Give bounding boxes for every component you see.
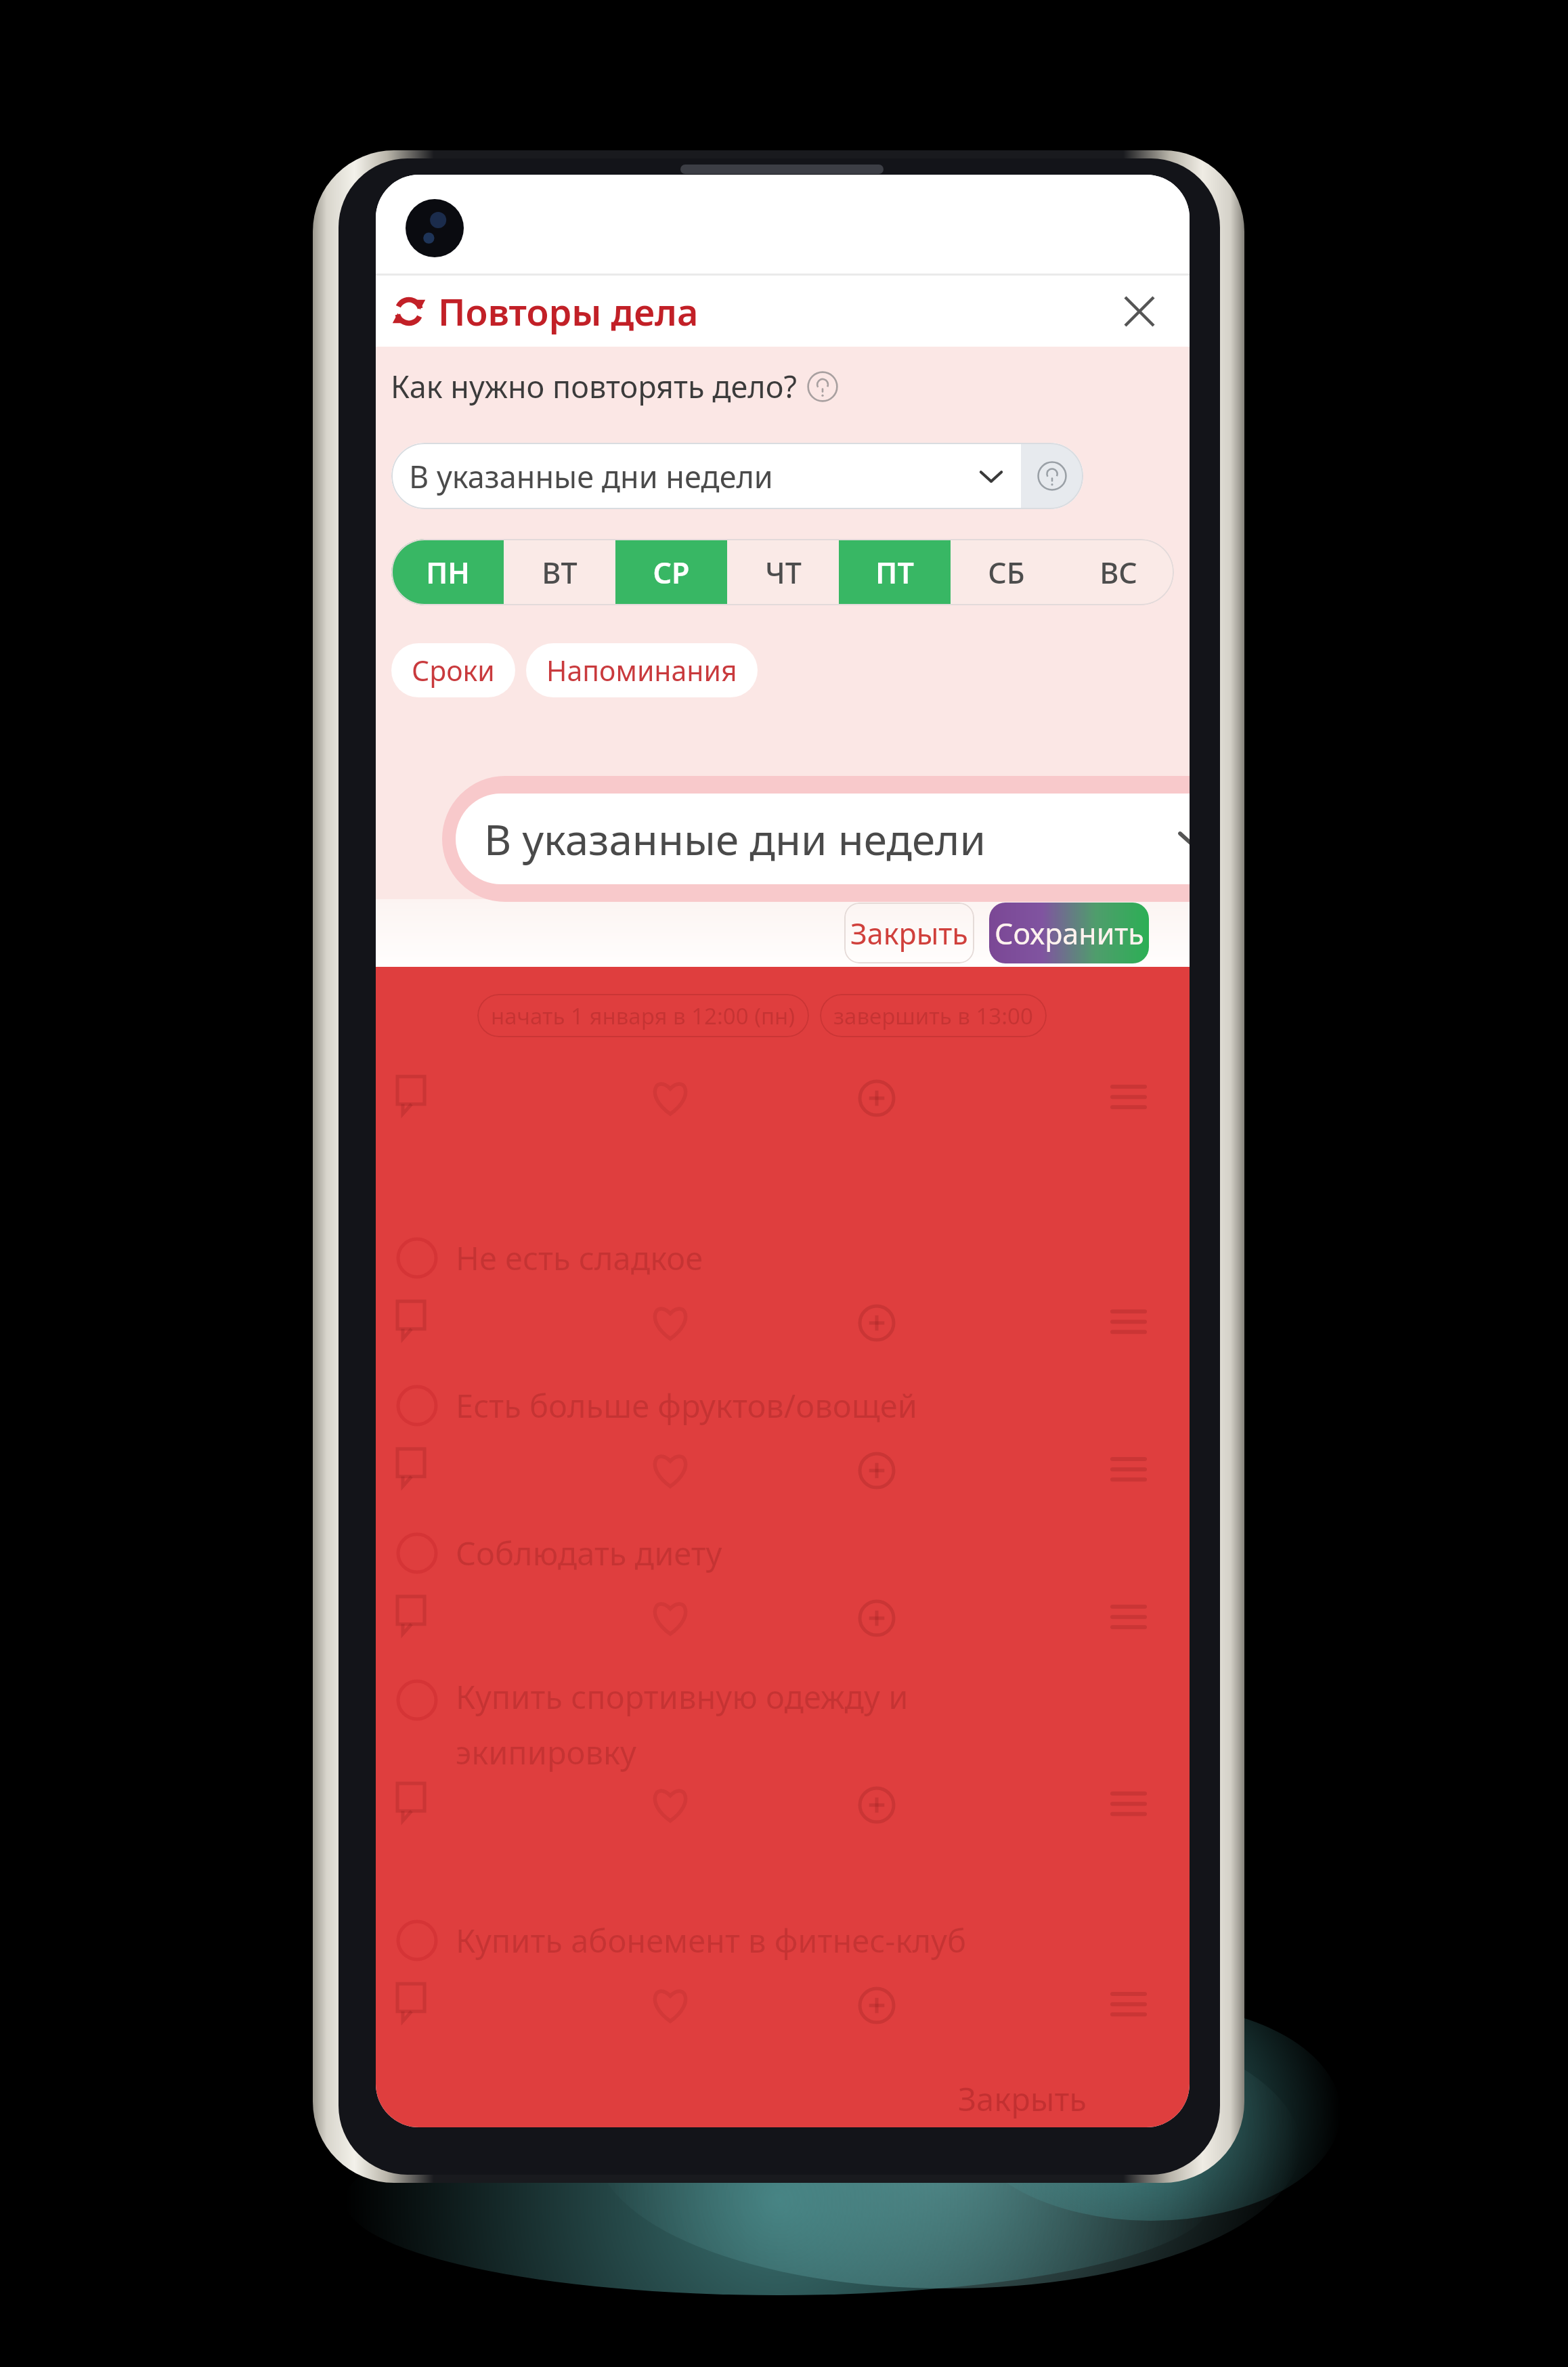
staticText: ВТ [542, 552, 578, 592]
button[interactable]: Закрыть [958, 2077, 1087, 2121]
button[interactable]: Не есть сладкое [396, 1236, 1190, 1280]
staticText: Повторы дела [438, 286, 699, 336]
button[interactable]: Help [806, 370, 839, 403]
other: Repeat [391, 293, 427, 330]
button[interactable]: Есть больше фруктов/овощей [396, 1384, 1190, 1427]
staticText: Соблюдать диету [456, 1532, 722, 1575]
button[interactable]: Закрыть [844, 903, 974, 963]
button[interactable]: Close [1107, 279, 1172, 344]
staticText: начать 1 января в 12:00 (пн) [491, 1001, 796, 1031]
button[interactable]: Help [1021, 443, 1083, 509]
staticText: Есть больше фруктов/овощей [456, 1384, 917, 1427]
button[interactable]: ВС [1062, 539, 1174, 605]
button[interactable]: Купить спортивную одежду и [396, 1675, 909, 1774]
staticText: экипировку [456, 1731, 636, 1774]
staticText: Купить спортивную одежду и [456, 1675, 909, 1718]
staticText: Закрыть [850, 913, 968, 953]
staticText: Сроки [412, 651, 495, 689]
staticText: ПТ [875, 552, 914, 592]
staticText: ВС [1099, 552, 1137, 592]
button[interactable]: ПН [391, 539, 504, 605]
button[interactable]: Напоминания [526, 643, 758, 697]
staticText: Закрыть [958, 2077, 1087, 2121]
staticText: Напоминания [546, 651, 737, 689]
staticText: Как нужно повторять дело? [391, 366, 797, 407]
button[interactable]: В указанные дни недели [456, 794, 1190, 884]
button[interactable]: начать 1 января в 12:00 (пн) [477, 994, 809, 1037]
staticText: В указанные дни недели [409, 456, 773, 497]
staticText: завершить в 13:00 [833, 1001, 1033, 1031]
staticText: ПН [426, 552, 470, 592]
staticText: ЧТ [765, 552, 802, 592]
staticText: В указанные дни недели [484, 810, 986, 867]
button[interactable]: СР [615, 539, 727, 605]
button[interactable]: СБ [951, 539, 1062, 605]
button[interactable]: Соблюдать диету [396, 1532, 1190, 1575]
button[interactable]: ПТ [839, 539, 951, 605]
button[interactable]: Сроки [391, 643, 515, 697]
staticText: Сохранить [995, 913, 1144, 953]
button[interactable]: ЧТ [727, 539, 839, 605]
staticText: Купить абонемент в фитнес-клуб [456, 1919, 966, 1962]
button[interactable]: завершить в 13:00 [820, 994, 1047, 1037]
button[interactable]: В указанные дни недели [391, 443, 1083, 509]
button[interactable]: Сохранить [989, 903, 1149, 963]
staticText: СБ [988, 552, 1025, 592]
staticText: Не есть сладкое [456, 1236, 703, 1280]
button[interactable]: ВТ [504, 539, 615, 605]
button[interactable]: Купить абонемент в фитнес-клуб [396, 1919, 1190, 1962]
staticText: СР [653, 552, 690, 592]
